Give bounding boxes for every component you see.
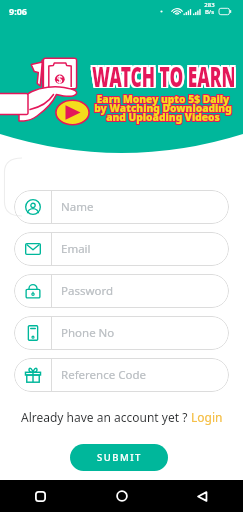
- staticText: Password: [61, 283, 114, 299]
- button[interactable]: Back: [162, 480, 243, 512]
- staticText: Earn Money upto 5$ Daily by Watching Dow…: [93, 93, 231, 125]
- staticText: WATCH TO EARN: [92, 56, 234, 88]
- staticText: SUBMIT: [97, 451, 142, 464]
- staticText: Email: [61, 241, 91, 257]
- staticText: Earn Money upto 5$ Daily by Watching Dow…: [95, 91, 233, 123]
- staticText: 9:06: [9, 5, 27, 17]
- staticText: Name: [61, 199, 94, 215]
- button[interactable]: Recent apps: [0, 480, 81, 512]
- staticText: Already have an account yet ?: [21, 409, 191, 425]
- staticText: WATCH TO EARN: [90, 56, 232, 88]
- staticText: WATCH TO EARN: [90, 55, 232, 86]
- button[interactable]: Name: [14, 190, 229, 224]
- button[interactable]: Phone No: [14, 316, 229, 350]
- staticText: WATCH TO EARN: [92, 57, 234, 89]
- staticText: WATCH TO EARN: [94, 57, 236, 89]
- staticText: WATCH TO EARN: [94, 56, 236, 88]
- button[interactable]: Password: [14, 274, 229, 308]
- button[interactable]: Email: [14, 232, 229, 266]
- staticText: WATCH TO EARN: [90, 57, 232, 89]
- button[interactable]: Home: [81, 480, 162, 512]
- staticText: Earn Money upto 5$ Daily by Watching Dow…: [94, 92, 232, 124]
- button[interactable]: SUBMIT: [70, 444, 168, 471]
- staticText: Earn Money upto 5$ Daily by Watching Dow…: [93, 91, 231, 123]
- staticText: 283 B/s: [204, 1, 215, 16]
- staticText: Earn Money upto 5$ Daily by Watching Dow…: [95, 93, 233, 125]
- staticText: Earn Money upto 5$ Daily by Watching Dow…: [93, 92, 231, 124]
- staticText: Earn Money upto 5$ Daily by Watching Dow…: [94, 91, 232, 123]
- staticText: Reference Code: [61, 367, 146, 383]
- staticText: Earn Money upto 5$ Daily by Watching Dow…: [95, 92, 233, 124]
- staticText: Earn Money upto 5$ Daily by Watching Dow…: [94, 93, 232, 125]
- staticText: Phone No: [61, 325, 115, 341]
- button[interactable]: Login: [191, 409, 223, 425]
- staticText: WATCH TO EARN: [94, 55, 236, 86]
- staticText: Login: [191, 409, 223, 425]
- staticText: WATCH TO EARN: [92, 55, 234, 86]
- button[interactable]: Reference Code: [14, 358, 229, 392]
